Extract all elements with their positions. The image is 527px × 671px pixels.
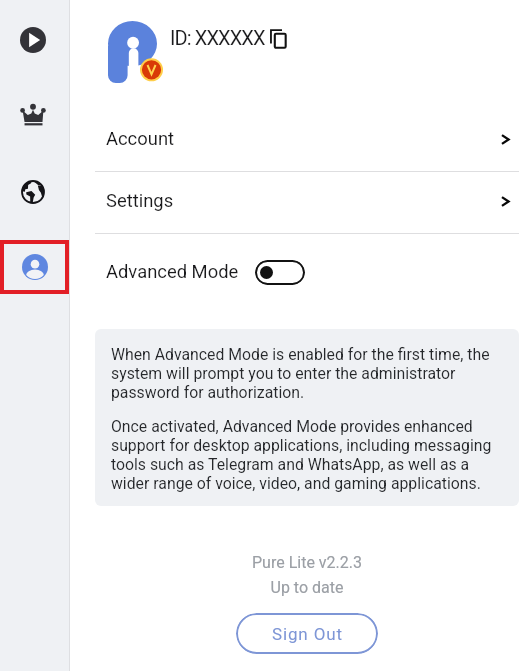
button[interactable]: Settings [95,170,519,232]
button[interactable]: Advanced Mode toggle [255,260,305,285]
staticText: When Advanced Mode is enabled for the fi… [111,345,497,402]
staticText: Settings [106,190,174,212]
staticText: Account [106,128,175,150]
staticText: Sign Out [272,624,343,644]
staticText: Up to date [95,578,519,597]
button[interactable]: Media [8,16,57,63]
staticText: Advanced Mode [106,261,239,283]
staticText: Pure Lite v2.2.3 [95,553,519,572]
staticText: Once activated, Advanced Mode provides e… [111,417,497,493]
button[interactable]: Network [8,168,57,215]
button[interactable]: Premium [8,91,57,138]
button[interactable]: Copy ID [265,23,291,54]
button[interactable]: Account [95,108,519,170]
staticText: ID: XXXXXX [170,26,265,49]
button[interactable]: Sign Out [236,613,378,654]
button[interactable]: Profile [0,240,69,294]
